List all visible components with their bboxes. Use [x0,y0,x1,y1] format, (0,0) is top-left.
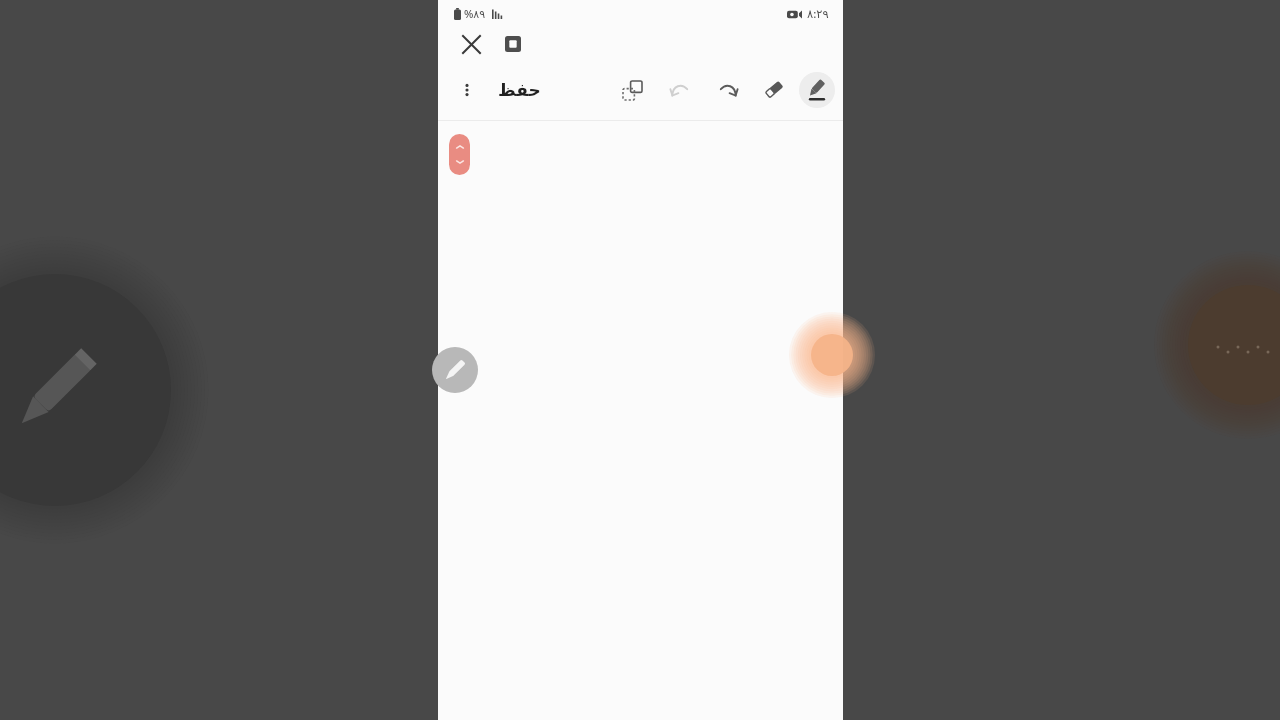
button[interactable]: Eraser [757,73,791,107]
button[interactable]: حفظ [490,76,549,104]
staticText: ٨:٢٩ [807,6,829,22]
button[interactable]: Pen [799,72,835,108]
button[interactable]: More options [450,73,484,107]
button[interactable]: Undo [663,73,697,107]
button[interactable]: Draw [432,347,478,393]
button[interactable]: Close [458,31,484,57]
staticText: %٨٩ [464,6,486,21]
button[interactable]: Select [615,73,649,107]
button[interactable]: Stop recording [500,31,526,57]
button[interactable]: Scroll [449,134,470,175]
button[interactable]: Redo [711,73,745,107]
staticText: حفظ [498,80,541,100]
